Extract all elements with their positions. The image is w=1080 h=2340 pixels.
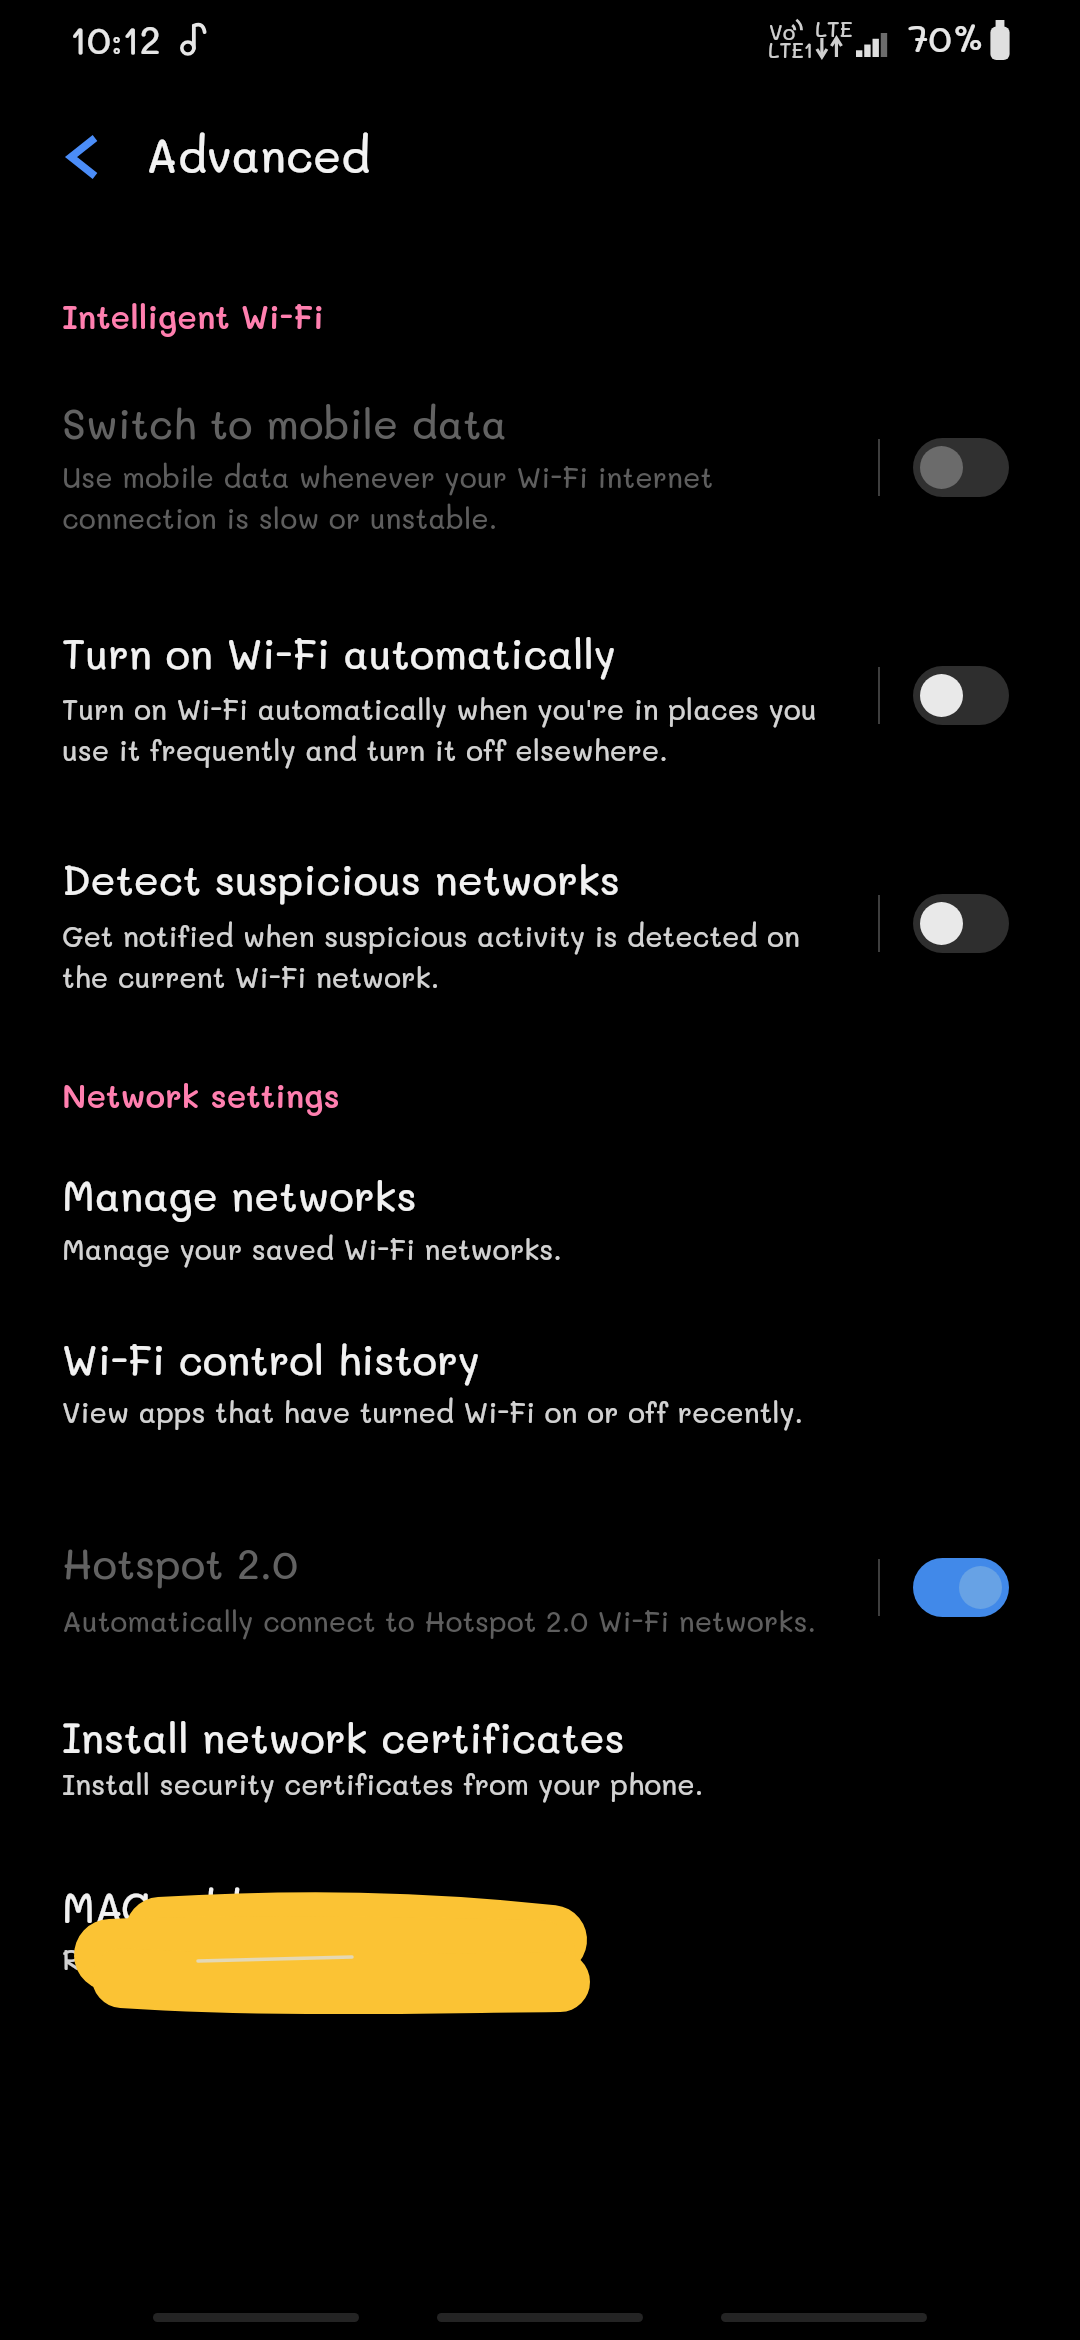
staticText: Advanced	[146, 125, 371, 185]
staticText: LTE	[815, 14, 853, 43]
staticText: LTE1	[768, 36, 814, 63]
staticText: Switch to mobile data	[62, 396, 507, 449]
button[interactable]: MAC address type	[0, 1864, 1080, 2034]
staticText: Manage networks	[62, 1168, 417, 1221]
button[interactable]: Wi-Fi control history	[0, 1316, 1080, 1487]
staticText: Turn on Wi-Fi automatically when you're …	[62, 690, 817, 768]
staticText: Network settings	[62, 1074, 340, 1116]
button[interactable]: Detect suspicious networks	[0, 836, 1080, 1011]
button[interactable]: Switch to mobile data	[0, 380, 1080, 552]
button[interactable]: Toggle	[913, 894, 1009, 953]
button[interactable]: Install network certificates	[0, 1694, 1080, 1859]
staticText: Automatically connect to Hotspot 2.0 Wi-…	[62, 1602, 817, 1639]
staticText: MAC address type	[62, 1880, 432, 1933]
button[interactable]: Turn on Wi-Fi automatically	[0, 610, 1080, 784]
staticText: Detect suspicious networks	[62, 852, 620, 905]
button[interactable]: Hotspot 2.0	[0, 1520, 1080, 1696]
staticText: Install security certificates from your …	[62, 1765, 704, 1802]
staticText: Hotspot 2.0	[62, 1536, 298, 1589]
staticText: Randomised MAC address	[62, 1940, 425, 1977]
staticText: Vo	[769, 18, 796, 45]
button[interactable]: Back	[39, 113, 127, 201]
staticText: Intelligent Wi-Fi	[62, 295, 324, 337]
staticText: Wi-Fi control history	[62, 1332, 480, 1385]
staticText: Manage your saved Wi-Fi networks.	[62, 1230, 562, 1267]
button[interactable]: Toggle	[913, 666, 1009, 725]
staticText: View apps that have turned Wi-Fi on or o…	[62, 1393, 804, 1430]
button[interactable]: Toggle	[913, 1558, 1009, 1617]
staticText: Get notified when suspicious activity is…	[62, 917, 800, 995]
staticText: Install network certificates	[62, 1710, 625, 1763]
staticText: Turn on Wi-Fi automatically	[62, 626, 616, 679]
staticText: Use mobile data whenever your Wi-Fi inte…	[62, 458, 714, 536]
staticText: 70%	[908, 13, 985, 61]
button[interactable]: Manage networks	[0, 1152, 1080, 1324]
button[interactable]: Toggle	[913, 438, 1009, 497]
staticText: 10:12	[70, 14, 161, 63]
